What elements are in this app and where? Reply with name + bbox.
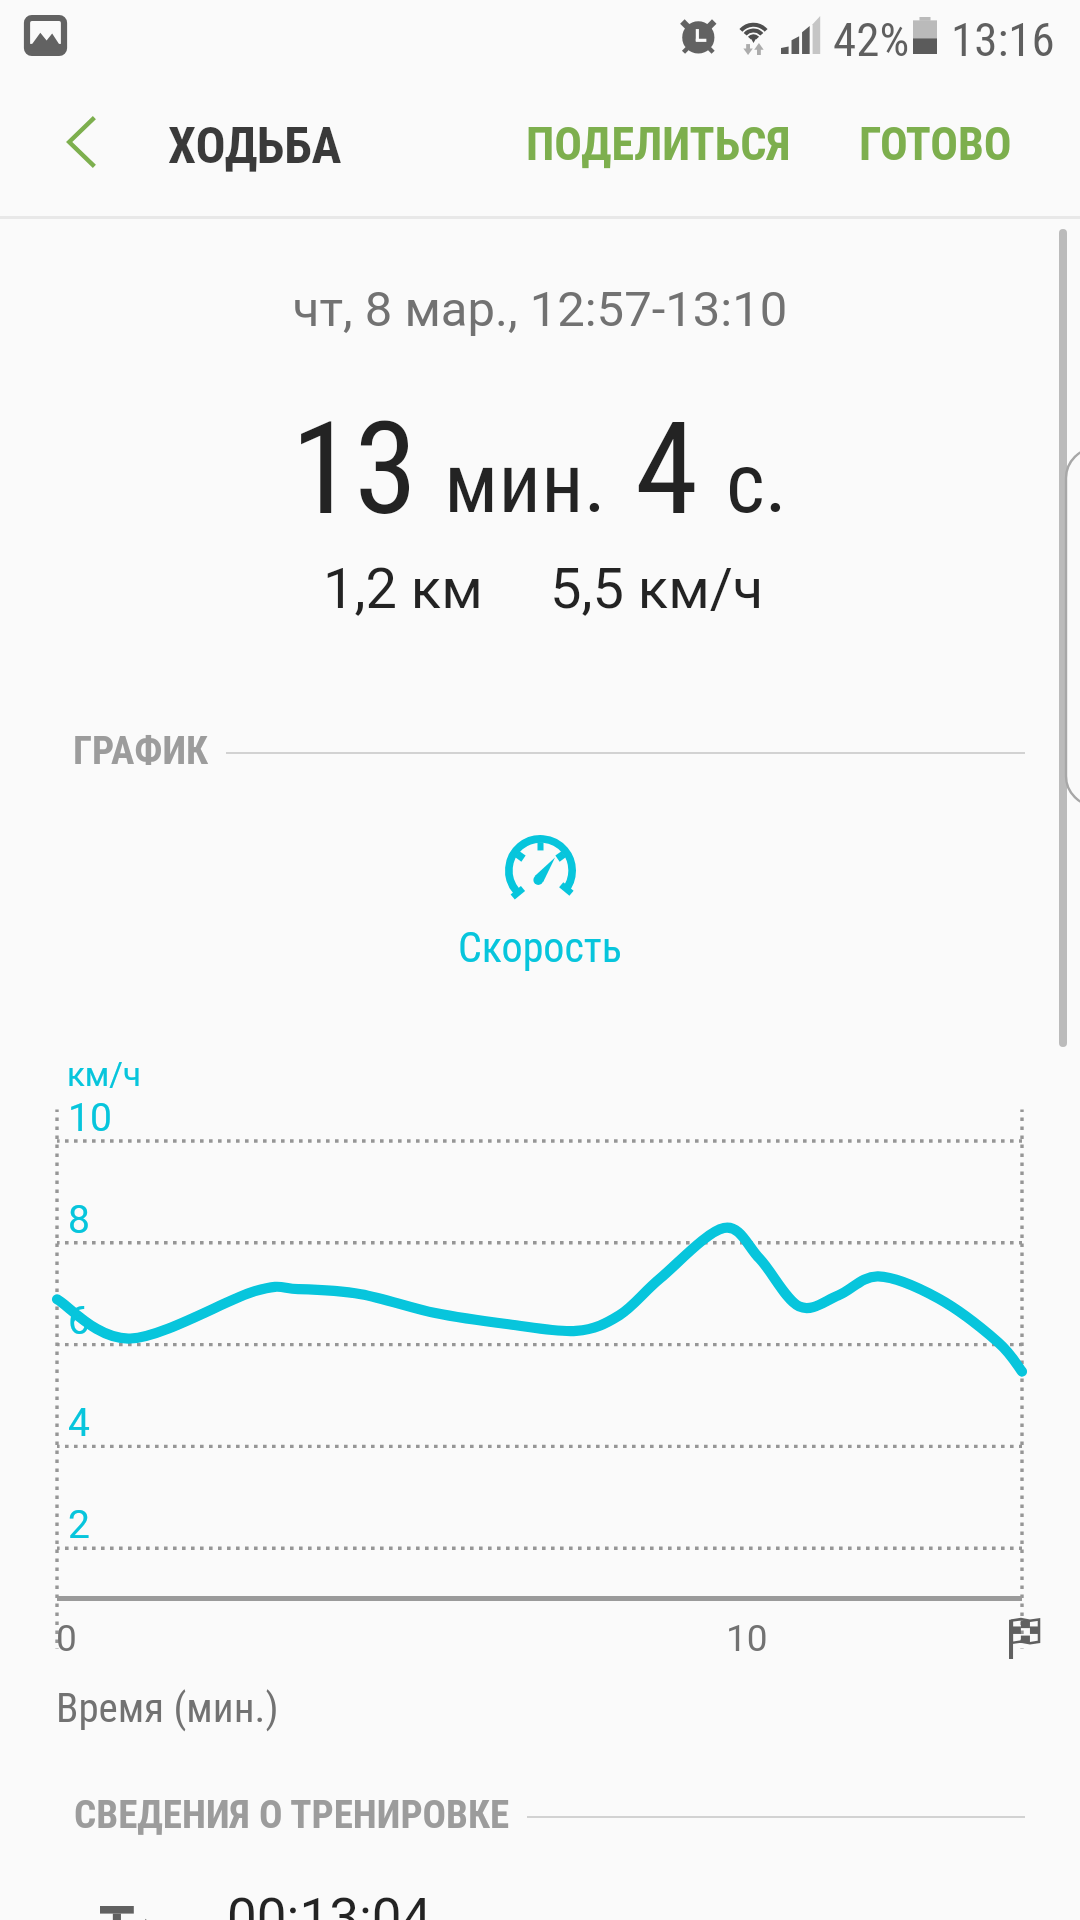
button[interactable]: ГОТОВО	[835, 80, 1036, 208]
staticText: 10	[68, 1095, 112, 1141]
staticText: ПОДЕЛИТЬСЯ	[526, 117, 791, 171]
staticText: 2	[68, 1502, 90, 1548]
staticText: 8	[68, 1197, 90, 1243]
staticText: мин.	[444, 434, 606, 532]
button[interactable]: ПОДЕЛИТЬСЯ	[502, 80, 815, 208]
staticText: 4	[68, 1400, 90, 1446]
staticText: СВЕДЕНИЯ О ТРЕНИРОВКЕ	[74, 1792, 510, 1838]
staticText: ГОТОВО	[859, 117, 1012, 171]
staticText: ХОДЬБА	[168, 117, 342, 176]
staticText: 1,2 км	[323, 556, 483, 622]
staticText: 42%	[833, 12, 910, 67]
staticText: с.	[726, 434, 787, 532]
button[interactable]: Back	[26, 78, 136, 206]
button[interactable]: 00:13:04	[0, 1880, 1080, 1920]
staticText: 6	[68, 1298, 90, 1344]
staticText: 00:13:04	[227, 1887, 432, 1920]
staticText: Время (мин.)	[56, 1684, 279, 1732]
button[interactable]: ХОДЬБА	[168, 82, 342, 210]
staticText: 4	[635, 394, 699, 544]
staticText: чт, 8 мар., 12:57-13:10	[0, 281, 1080, 338]
staticText: км/ч	[67, 1055, 141, 1094]
staticText: 10	[726, 1617, 768, 1660]
button[interactable]: Скорость	[0, 835, 1080, 972]
staticText: Скорость	[458, 923, 622, 972]
staticText: 13	[291, 394, 418, 544]
staticText: 13:16	[951, 12, 1055, 67]
staticText: ГРАФИК	[73, 728, 209, 774]
staticText: 0	[56, 1617, 77, 1660]
staticText: 5,5 км/ч	[550, 556, 764, 622]
